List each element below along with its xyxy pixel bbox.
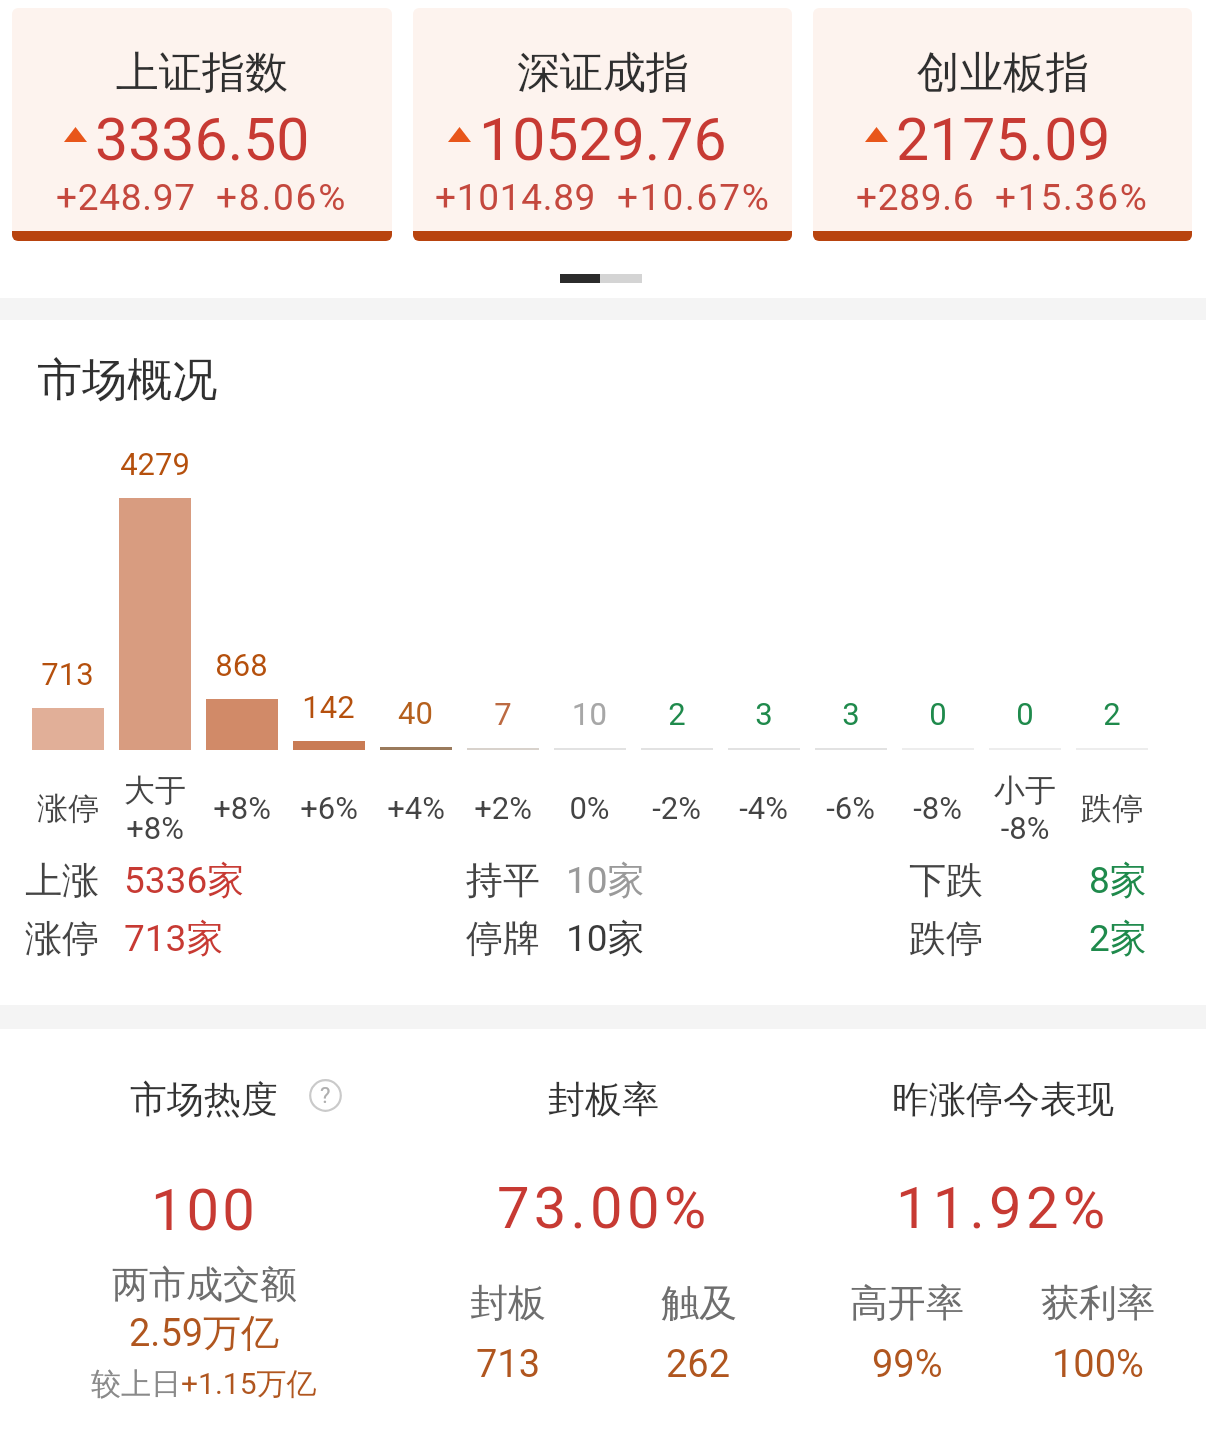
staticText: 获利率: [1041, 1279, 1155, 1327]
staticText: 涨停: [25, 915, 99, 962]
staticText: 较上日+1.15万亿: [91, 1365, 317, 1403]
staticText: 3: [755, 696, 773, 732]
staticText: 868: [215, 647, 268, 683]
button[interactable]: 上证指数: [12, 8, 392, 241]
staticText: 713家: [124, 915, 224, 962]
staticText: 2: [1103, 696, 1121, 732]
staticText: 142: [302, 689, 355, 725]
staticText: -6%: [826, 790, 875, 826]
button[interactable]: 市场热度说明: [309, 1079, 342, 1112]
staticText: 11.92%: [896, 1174, 1110, 1242]
staticText: -8%: [913, 790, 962, 826]
staticText: 0: [929, 696, 947, 732]
staticText: +4%: [387, 790, 445, 826]
staticText: 2.59万亿: [129, 1309, 280, 1357]
staticText: 深证成指: [517, 46, 689, 100]
staticText: 3336.50: [95, 105, 310, 174]
staticText: 0%: [569, 790, 610, 826]
staticText: 市场概况: [37, 352, 217, 409]
staticText: 封板: [470, 1279, 546, 1327]
staticText: 跌停: [909, 915, 983, 962]
staticText: 封板率: [548, 1076, 659, 1123]
staticText: 10: [572, 696, 607, 732]
staticText: 触及: [661, 1279, 737, 1327]
staticText: 100%: [1052, 1342, 1144, 1387]
button[interactable]: 创业板指: [813, 8, 1192, 241]
staticText: +15.36%: [995, 176, 1149, 219]
staticText: 上证指数: [116, 46, 288, 100]
staticText: 262: [666, 1342, 731, 1387]
staticText: 大于 +8%: [124, 771, 186, 846]
staticText: 停牌: [466, 915, 540, 962]
staticText: 高开率: [850, 1279, 964, 1327]
staticText: 100: [151, 1176, 258, 1244]
staticText: 10529.76: [479, 105, 727, 174]
staticText: 创业板指: [917, 46, 1089, 100]
staticText: 10家: [566, 915, 645, 962]
staticText: +6%: [300, 790, 358, 826]
staticText: 跌停: [1081, 789, 1143, 828]
staticText: +10.67%: [617, 176, 771, 219]
staticText: 10家: [566, 857, 645, 904]
staticText: 713: [41, 656, 94, 692]
staticText: 3: [842, 696, 860, 732]
staticText: 5336家: [124, 857, 245, 904]
staticText: +289.6: [856, 176, 975, 219]
staticText: 2家: [1089, 915, 1147, 962]
staticText: 4279: [120, 446, 190, 482]
staticText: 市场热度: [130, 1076, 278, 1122]
staticText: 40: [398, 695, 433, 731]
staticText: 涨停: [37, 789, 99, 828]
button[interactable]: 昨涨停今表现: [812, 1029, 1193, 1440]
staticText: 99%: [872, 1342, 943, 1387]
button[interactable]: 市场热度: [13, 1029, 395, 1440]
staticText: +1014.89: [435, 176, 597, 219]
staticText: 2: [668, 696, 686, 732]
staticText: 2175.09: [896, 105, 1111, 174]
staticText: +8.06%: [216, 176, 348, 219]
staticText: -4%: [739, 790, 788, 826]
staticText: +8%: [213, 790, 271, 826]
staticText: 持平: [466, 857, 540, 904]
staticText: 73.00%: [497, 1174, 711, 1242]
staticText: -2%: [652, 790, 701, 826]
staticText: +248.97: [56, 176, 196, 219]
button[interactable]: 封板率: [413, 1029, 794, 1440]
staticText: 下跌: [909, 857, 983, 904]
staticText: 7: [494, 696, 512, 732]
staticText: 0: [1016, 696, 1034, 732]
staticText: 两市成交额: [112, 1261, 297, 1308]
staticText: +2%: [474, 790, 532, 826]
staticText: 上涨: [25, 857, 99, 904]
staticText: 小于 -8%: [994, 771, 1056, 846]
staticText: 713: [476, 1342, 541, 1387]
staticText: 8家: [1089, 857, 1147, 904]
button[interactable]: 深证成指: [413, 8, 792, 241]
staticText: 昨涨停今表现: [892, 1076, 1114, 1123]
staticText: ?: [320, 1083, 331, 1109]
